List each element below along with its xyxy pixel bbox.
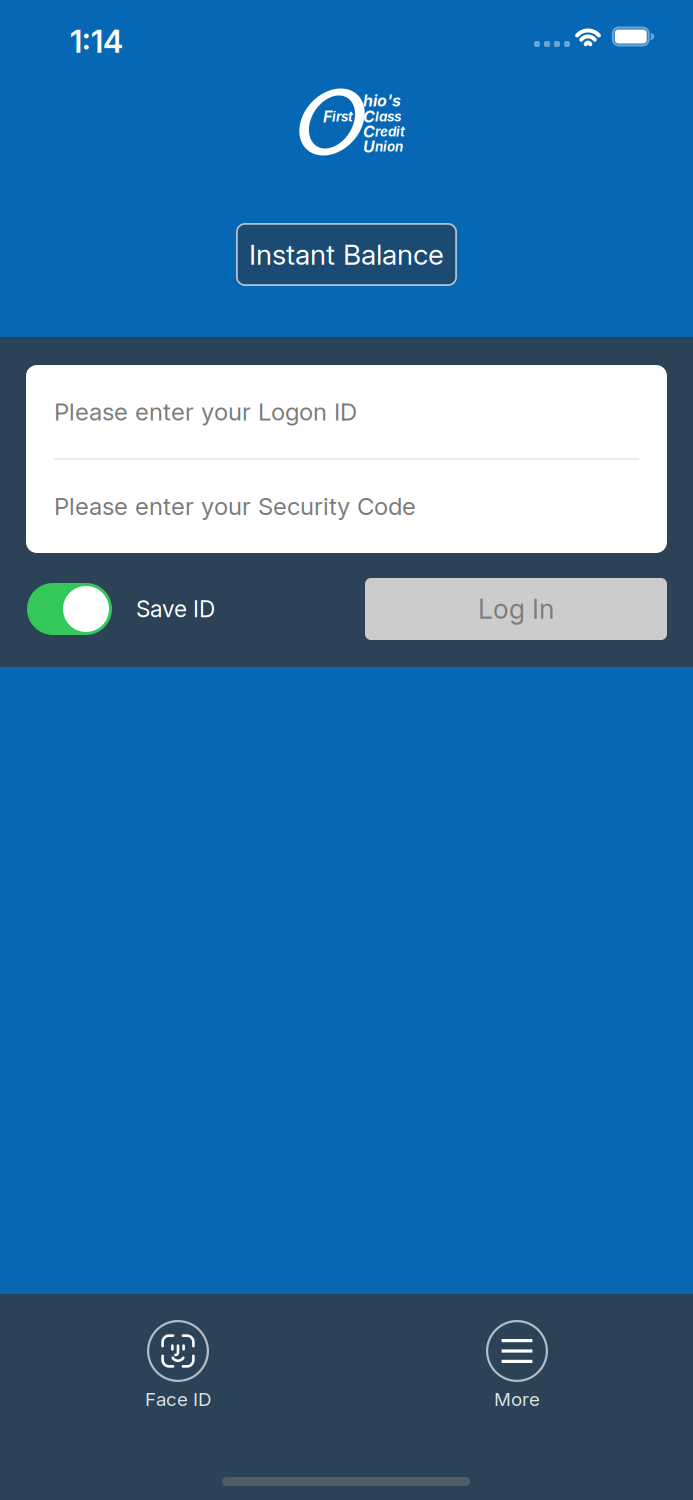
- staticText: Please enter your Security Code: [54, 492, 416, 521]
- staticText: C: [363, 107, 375, 126]
- staticText: More: [494, 1388, 540, 1411]
- staticText: Save ID: [136, 595, 215, 623]
- staticText: C: [363, 122, 375, 141]
- staticText: nion: [375, 139, 403, 155]
- staticText: Log In: [478, 593, 554, 625]
- staticText: Instant Balance: [249, 238, 444, 271]
- staticText: 1:14: [70, 23, 123, 60]
- staticText: Face ID: [145, 1388, 211, 1411]
- staticText: irst: [332, 109, 353, 125]
- staticText: Please enter your Logon ID: [54, 397, 357, 426]
- button[interactable]: Save ID: [27, 583, 215, 635]
- staticText: hio's: [363, 91, 401, 110]
- staticText: lass: [375, 109, 401, 125]
- button[interactable]: Please enter your Security Code: [26, 460, 667, 553]
- button[interactable]: More: [437, 1320, 597, 1411]
- button[interactable]: Log In: [365, 578, 667, 640]
- staticText: U: [363, 137, 375, 156]
- staticText: F: [323, 107, 332, 126]
- staticText: redit: [375, 124, 405, 140]
- button[interactable]: Please enter your Logon ID: [26, 365, 667, 458]
- button[interactable]: Face ID: [98, 1320, 258, 1411]
- button[interactable]: Instant Balance: [236, 223, 457, 286]
